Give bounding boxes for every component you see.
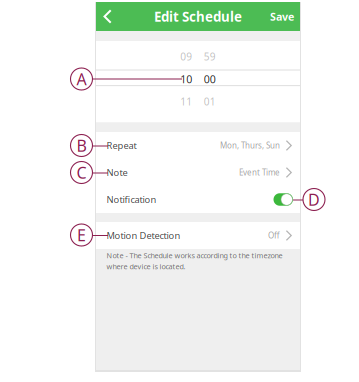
- button[interactable]: Notification: [96, 186, 300, 213]
- staticText: A: [76, 68, 86, 90]
- staticText: Save: [270, 9, 294, 24]
- staticText: Mon, Thurs, Sun: [220, 140, 280, 151]
- button[interactable]: Back: [96, 2, 121, 31]
- button[interactable]: Repeat: [96, 132, 300, 159]
- staticText: C: [76, 162, 86, 183]
- staticText: Repeat: [106, 139, 136, 152]
- button[interactable]: Save: [260, 2, 300, 31]
- staticText: 09: [180, 50, 192, 63]
- staticText: Note: [106, 166, 127, 179]
- staticText: Note - The Schedule works according to t…: [106, 250, 282, 260]
- staticText: Event Time: [239, 167, 280, 178]
- staticText: B: [76, 135, 86, 156]
- staticText: 11: [180, 95, 192, 108]
- staticText: Edit Schedule: [154, 8, 242, 25]
- button[interactable]: Note: [96, 159, 300, 186]
- staticText: D: [308, 189, 320, 210]
- button[interactable]: Motion Detection: [96, 222, 300, 249]
- staticText: Off: [268, 230, 280, 241]
- staticText: 59: [204, 50, 216, 63]
- staticText: 01: [204, 95, 216, 108]
- staticText: E: [77, 224, 86, 246]
- staticText: 00: [204, 72, 216, 86]
- staticText: Notification: [106, 193, 156, 206]
- staticText: Motion Detection: [106, 229, 180, 242]
- staticText: 10: [180, 72, 192, 86]
- staticText: where device is located.: [106, 261, 185, 271]
